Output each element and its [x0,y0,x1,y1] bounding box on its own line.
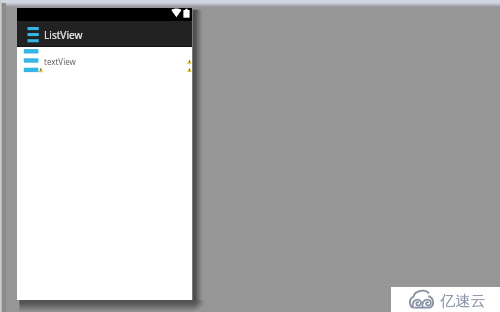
button[interactable]: List item 1 [17,47,192,56]
staticText: 亿速云 [440,291,486,310]
button[interactable] [17,21,192,47]
button[interactable]: List item 3 [17,66,192,75]
button[interactable]: Open navigation menu [26,25,40,45]
staticText: textView [44,56,76,67]
button[interactable]: List item textView [17,57,192,66]
staticText: ListView [44,28,83,42]
button[interactable]: 亿速云 [391,287,500,312]
